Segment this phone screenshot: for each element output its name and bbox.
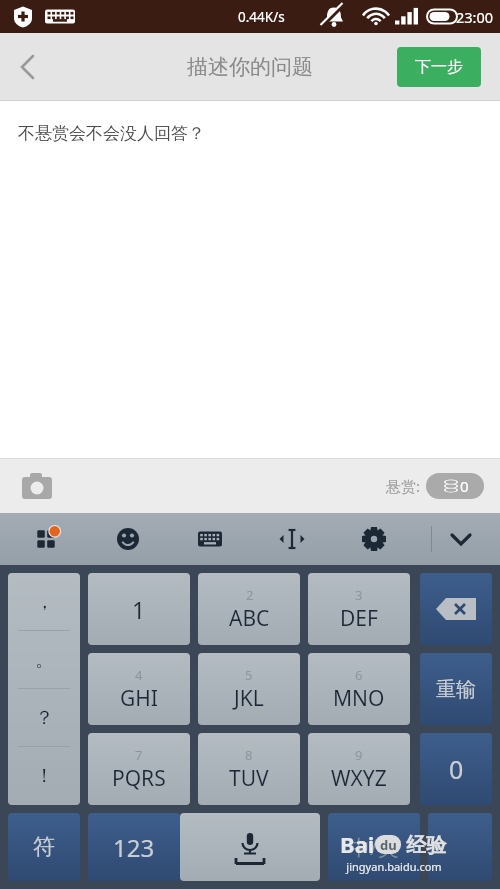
button[interactable] (420, 573, 492, 645)
staticText: MNO (333, 684, 385, 713)
staticText: ！ (35, 764, 54, 788)
staticText: 4 (135, 666, 143, 684)
staticText: 0 (449, 752, 464, 786)
button[interactable]: 悬赏: (386, 473, 484, 499)
button[interactable] (428, 813, 492, 881)
button[interactable]: 7 (88, 733, 190, 805)
button[interactable]: Apps (18, 513, 74, 565)
button[interactable]: Back (0, 41, 52, 93)
staticText: TUV (229, 764, 269, 793)
staticText: 0 (460, 476, 469, 496)
button[interactable]: Keyboard (182, 513, 238, 565)
staticText: 123 (113, 831, 155, 864)
button[interactable]: 下一步 (397, 47, 481, 87)
button[interactable]: 123 (88, 813, 180, 881)
staticText: 描述你的问题 (187, 54, 313, 80)
staticText: Bai (340, 829, 375, 859)
button[interactable]: Emoji (100, 513, 156, 565)
staticText: ABC (229, 604, 270, 633)
staticText: 下一步 (415, 57, 463, 77)
staticText: DEF (340, 604, 378, 633)
staticText: 2 (246, 586, 254, 604)
staticText: GHI (120, 684, 158, 713)
staticText: 经验 (401, 831, 447, 858)
staticText: JKL (234, 684, 264, 713)
button[interactable]: Settings (346, 513, 402, 565)
staticText: 重输 (436, 677, 476, 702)
staticText: PQRS (112, 764, 166, 793)
staticText: ， (35, 590, 54, 614)
staticText: 1 (132, 594, 146, 625)
staticText: 符 (33, 833, 55, 861)
staticText: jingyan.baidu.com (346, 859, 442, 874)
button[interactable]: 4 (88, 653, 190, 725)
staticText: 不悬赏会不会没人回答？ (18, 123, 205, 144)
staticText: 3 (355, 586, 363, 604)
staticText: 5 (245, 666, 253, 684)
button[interactable]: 符 (8, 813, 80, 881)
staticText: ？ (35, 706, 54, 730)
button[interactable]: 6 (308, 653, 410, 725)
staticText: 悬赏: (386, 476, 421, 496)
button[interactable]: Move cursor (264, 513, 320, 565)
button[interactable]: Add photo (14, 463, 60, 509)
staticText: 8 (245, 746, 253, 764)
button[interactable]: 1 (88, 573, 190, 645)
button[interactable]: Hide keyboard (432, 513, 490, 565)
button[interactable]: ， (8, 573, 80, 805)
staticText: 6 (355, 666, 363, 684)
button[interactable]: 0 (420, 733, 492, 805)
button[interactable] (180, 813, 320, 881)
staticText: 7 (135, 746, 143, 764)
staticText: du (380, 836, 397, 854)
button[interactable]: 2 (198, 573, 300, 645)
button[interactable]: 中/英 (328, 813, 420, 881)
staticText: 0.44K/s (238, 8, 285, 26)
button[interactable]: 5 (198, 653, 300, 725)
button[interactable]: 重输 (420, 653, 492, 725)
button[interactable]: 3 (308, 573, 410, 645)
staticText: WXYZ (331, 764, 387, 793)
staticText: 9 (355, 746, 363, 764)
staticText: 。 (35, 648, 54, 672)
staticText: 23:00 (456, 7, 494, 27)
staticText: 中/英 (349, 833, 399, 862)
button[interactable]: 8 (198, 733, 300, 805)
button[interactable]: 9 (308, 733, 410, 805)
